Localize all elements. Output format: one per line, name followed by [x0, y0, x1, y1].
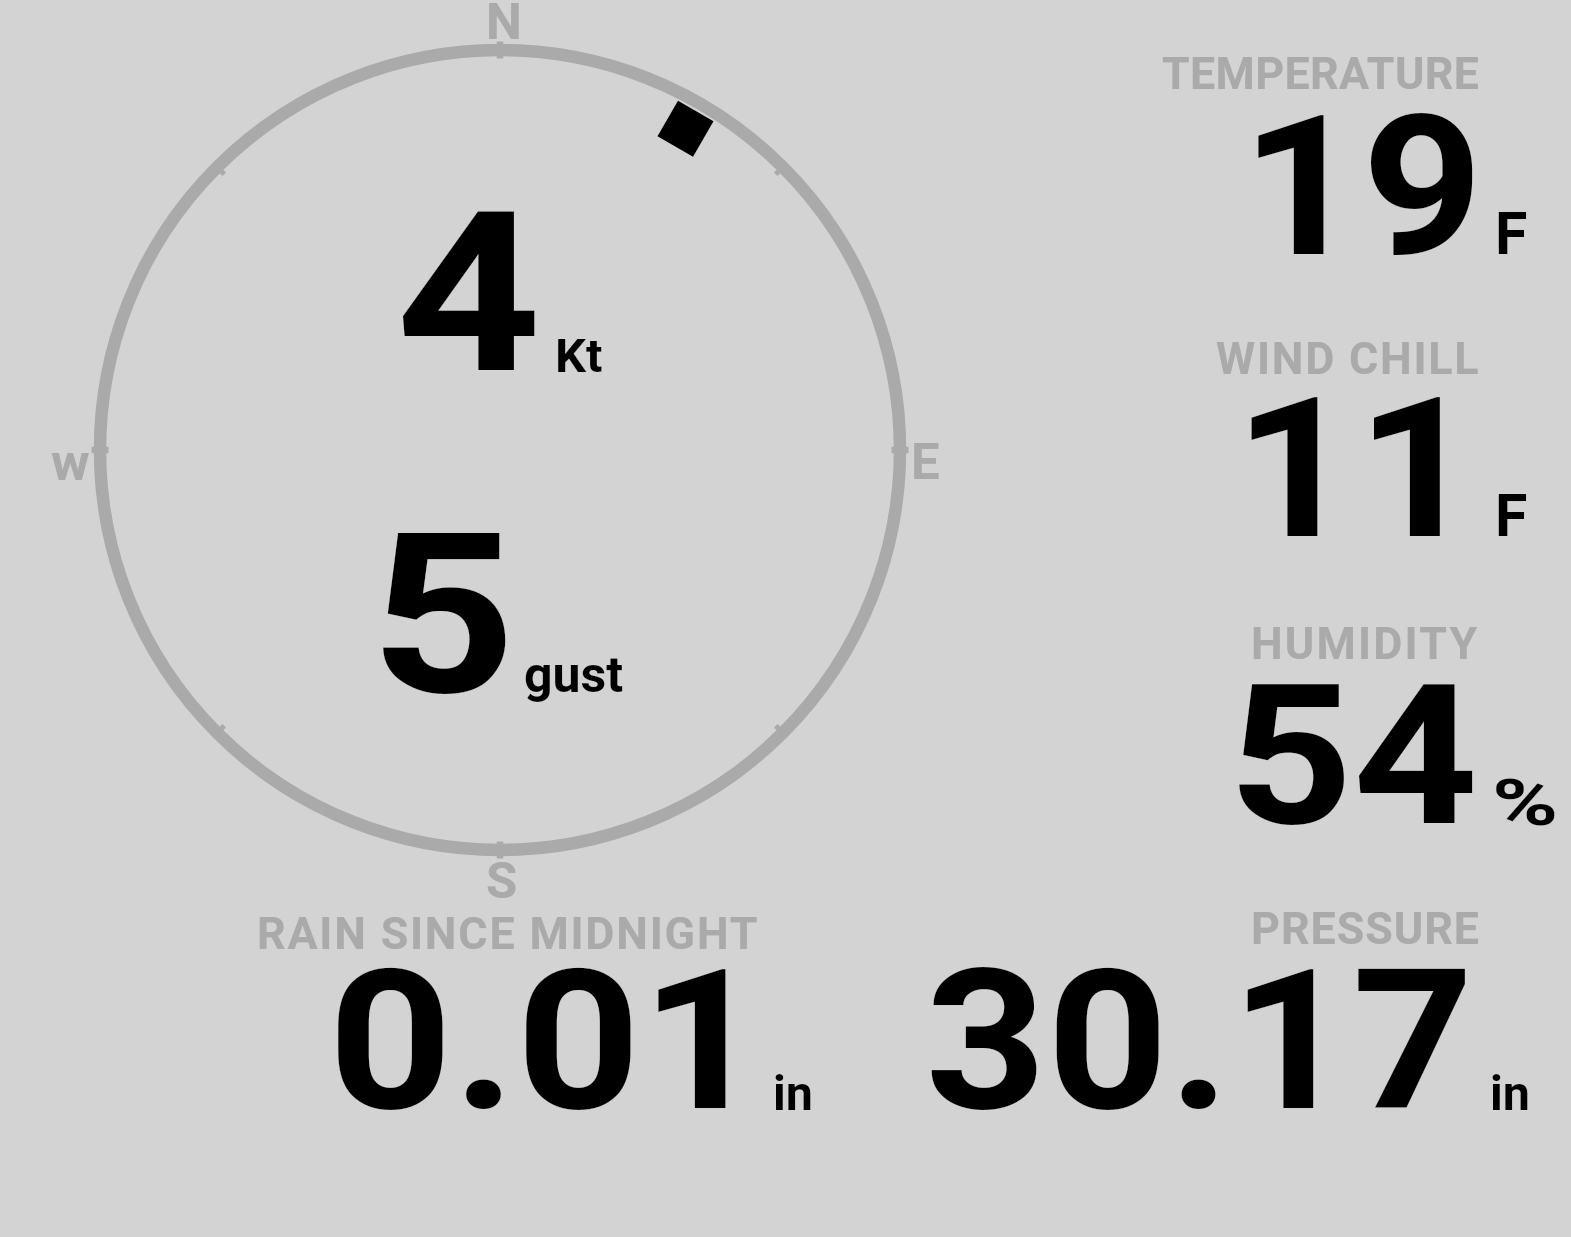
staticText: S — [486, 851, 518, 911]
staticText: WIND CHILL — [1216, 332, 1481, 385]
staticText: in — [773, 1065, 814, 1122]
staticText: Kt — [555, 329, 603, 383]
staticText: 4 — [396, 164, 542, 424]
staticText: TEMPERATURE — [1162, 47, 1480, 100]
staticText: w — [51, 431, 90, 493]
staticText: in — [1490, 1065, 1531, 1122]
staticText: N — [486, 0, 522, 52]
staticText: 11 — [1234, 356, 1479, 583]
button[interactable]: Wind 4 knots, gusting 5, direction north… — [90, 40, 910, 860]
staticText: 54 — [1228, 642, 1478, 871]
staticText: HUMIDITY — [1251, 617, 1480, 670]
button[interactable]: Temperature 19 F — [1100, 40, 1571, 270]
staticText: RAIN SINCE MIDNIGHT — [257, 907, 760, 960]
staticText: E — [911, 432, 940, 492]
staticText: 30.17 — [925, 928, 1474, 1155]
staticText: PRESSURE — [1251, 902, 1481, 955]
staticText: 5 — [370, 485, 516, 746]
staticText: gust — [524, 646, 624, 705]
staticText: 0.01 — [328, 928, 766, 1155]
button[interactable]: Humidity 54 percent — [1100, 605, 1571, 835]
button[interactable]: Wind chill 11 F — [1100, 320, 1571, 550]
staticText: F — [1495, 199, 1528, 268]
staticText: % — [1492, 766, 1559, 841]
staticText: 19 — [1241, 74, 1484, 301]
button[interactable]: Pressure 30.17 in — [880, 895, 1571, 1125]
button[interactable]: Rain since midnight 0.01 in — [230, 895, 850, 1125]
staticText: F — [1495, 481, 1528, 550]
